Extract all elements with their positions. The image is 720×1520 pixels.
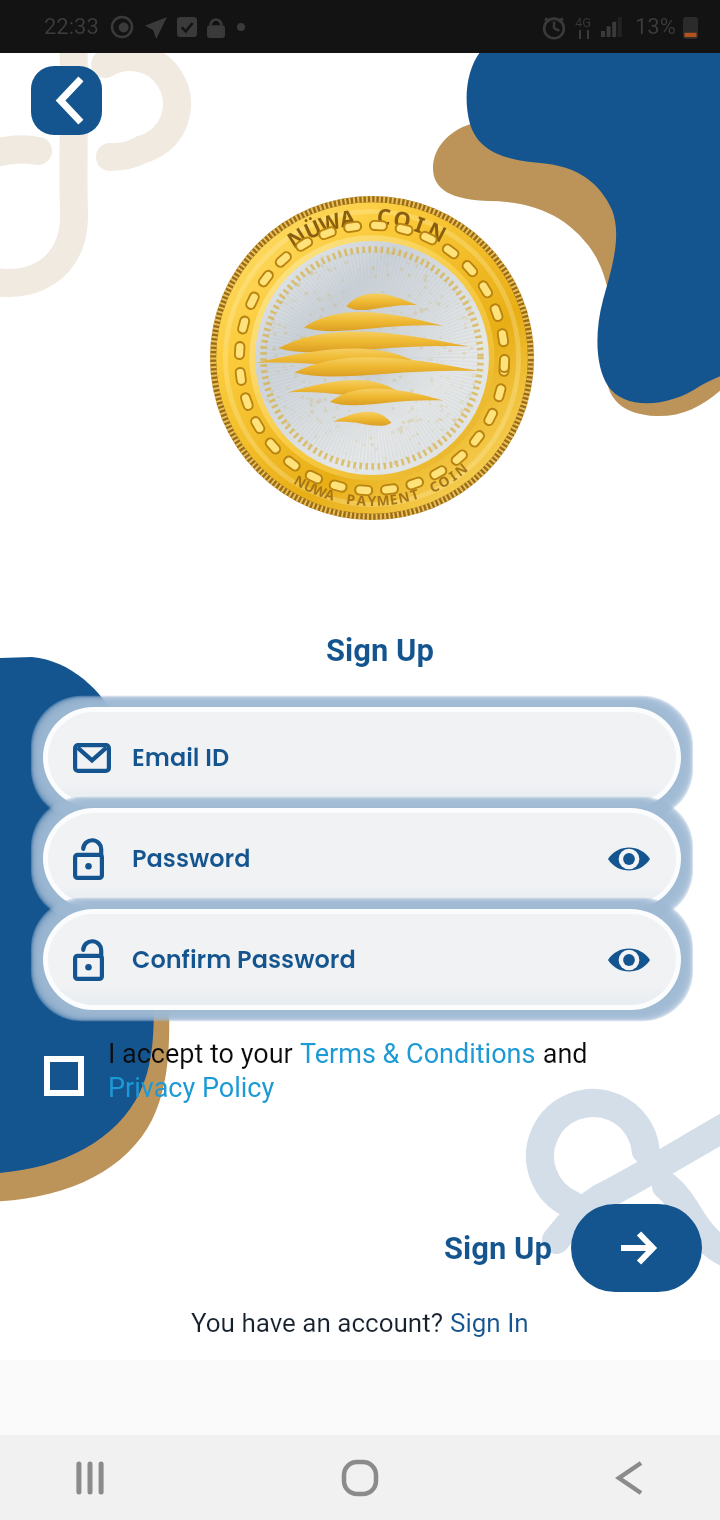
button[interactable]: Terms & Conditions	[300, 1038, 536, 1070]
staticText: Email ID	[132, 741, 230, 775]
staticText: Sign Up	[20, 632, 720, 668]
staticText: I accept to your	[108, 1038, 300, 1070]
button[interactable]: Home	[310, 1438, 410, 1518]
button[interactable]: Email ID	[30, 694, 694, 821]
button[interactable]: Recent apps	[40, 1438, 140, 1518]
staticText: 22:33	[44, 14, 99, 40]
staticText: 4G	[575, 15, 592, 30]
button[interactable]: Back	[31, 66, 102, 135]
button[interactable]: Back	[580, 1438, 680, 1518]
staticText: You have an account?	[191, 1308, 450, 1338]
staticText: and	[536, 1038, 588, 1070]
staticText: Confirm Password	[132, 943, 356, 977]
button[interactable]: Accept terms and conditions	[44, 1056, 84, 1096]
staticText: Password	[132, 842, 251, 876]
button[interactable]: Privacy Policy	[108, 1072, 275, 1104]
button[interactable]: Sign In	[450, 1308, 529, 1338]
button[interactable]: Password	[30, 795, 694, 922]
button[interactable]: Confirm Password	[30, 896, 694, 1023]
button[interactable]: Sign Up	[571, 1204, 702, 1292]
button[interactable]: Show password	[602, 832, 656, 886]
button[interactable]: Sign Up	[444, 1230, 552, 1266]
staticText: 13%	[635, 14, 676, 40]
button[interactable]: Show password	[602, 933, 656, 987]
